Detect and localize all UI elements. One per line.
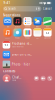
staticText: mobile xyxy=(12,79,16,81)
staticText: 12 xyxy=(4,44,8,47)
button[interactable]: FaceTime xyxy=(40,76,46,81)
button[interactable]: Mail xyxy=(3,17,12,28)
staticText: Search xyxy=(8,7,16,10)
button[interactable]: Message xyxy=(34,76,39,81)
button[interactable]: Search xyxy=(3,6,41,11)
staticText: Plans xyxy=(45,26,49,28)
button[interactable]: Photos xyxy=(13,28,22,39)
staticText: Prochaine réunion xyxy=(12,42,31,45)
staticText: 9:41 xyxy=(3,1,10,5)
button[interactable]: Rappels xyxy=(23,17,32,28)
staticText: 12 xyxy=(45,31,49,35)
staticText: Photos xyxy=(15,37,20,39)
staticText: Calendrier xyxy=(43,37,51,39)
button[interactable]: Envoi un e-mail à Jordi xyxy=(3,50,52,59)
staticText: Suggestions xyxy=(3,13,20,17)
button[interactable]: Plans xyxy=(43,17,52,28)
button[interactable]: Notes xyxy=(33,28,42,39)
button[interactable]: Charlotte Martin xyxy=(3,73,32,83)
button[interactable]: Call xyxy=(47,76,52,81)
staticText: Photo · hier xyxy=(12,63,30,66)
staticText: Charlotte Martin xyxy=(12,76,21,79)
staticText: aujourd'hui 14:30 xyxy=(12,46,24,48)
button[interactable]: 12 xyxy=(43,28,52,39)
staticText: Musique xyxy=(14,26,20,28)
button[interactable]: Météo xyxy=(33,17,42,28)
button[interactable]: Cancel xyxy=(43,6,52,11)
staticText: Contacts xyxy=(3,69,15,73)
button[interactable]: iTunes xyxy=(3,28,12,39)
staticText: Météo xyxy=(35,26,39,28)
staticText: iTunes xyxy=(5,37,10,39)
button[interactable]: 12 xyxy=(3,40,52,50)
staticText: Photos xyxy=(25,37,30,39)
button[interactable]: Photo · hier xyxy=(3,59,52,69)
staticText: Notes xyxy=(35,37,39,39)
button[interactable]: Photos xyxy=(23,28,32,39)
button[interactable]: Musique xyxy=(13,17,22,28)
staticText: Rappels xyxy=(24,26,30,28)
staticText: Envoi un e-mail à Jordi xyxy=(12,53,31,56)
staticText: Mail xyxy=(6,26,8,28)
staticText: Cancel xyxy=(43,7,52,10)
